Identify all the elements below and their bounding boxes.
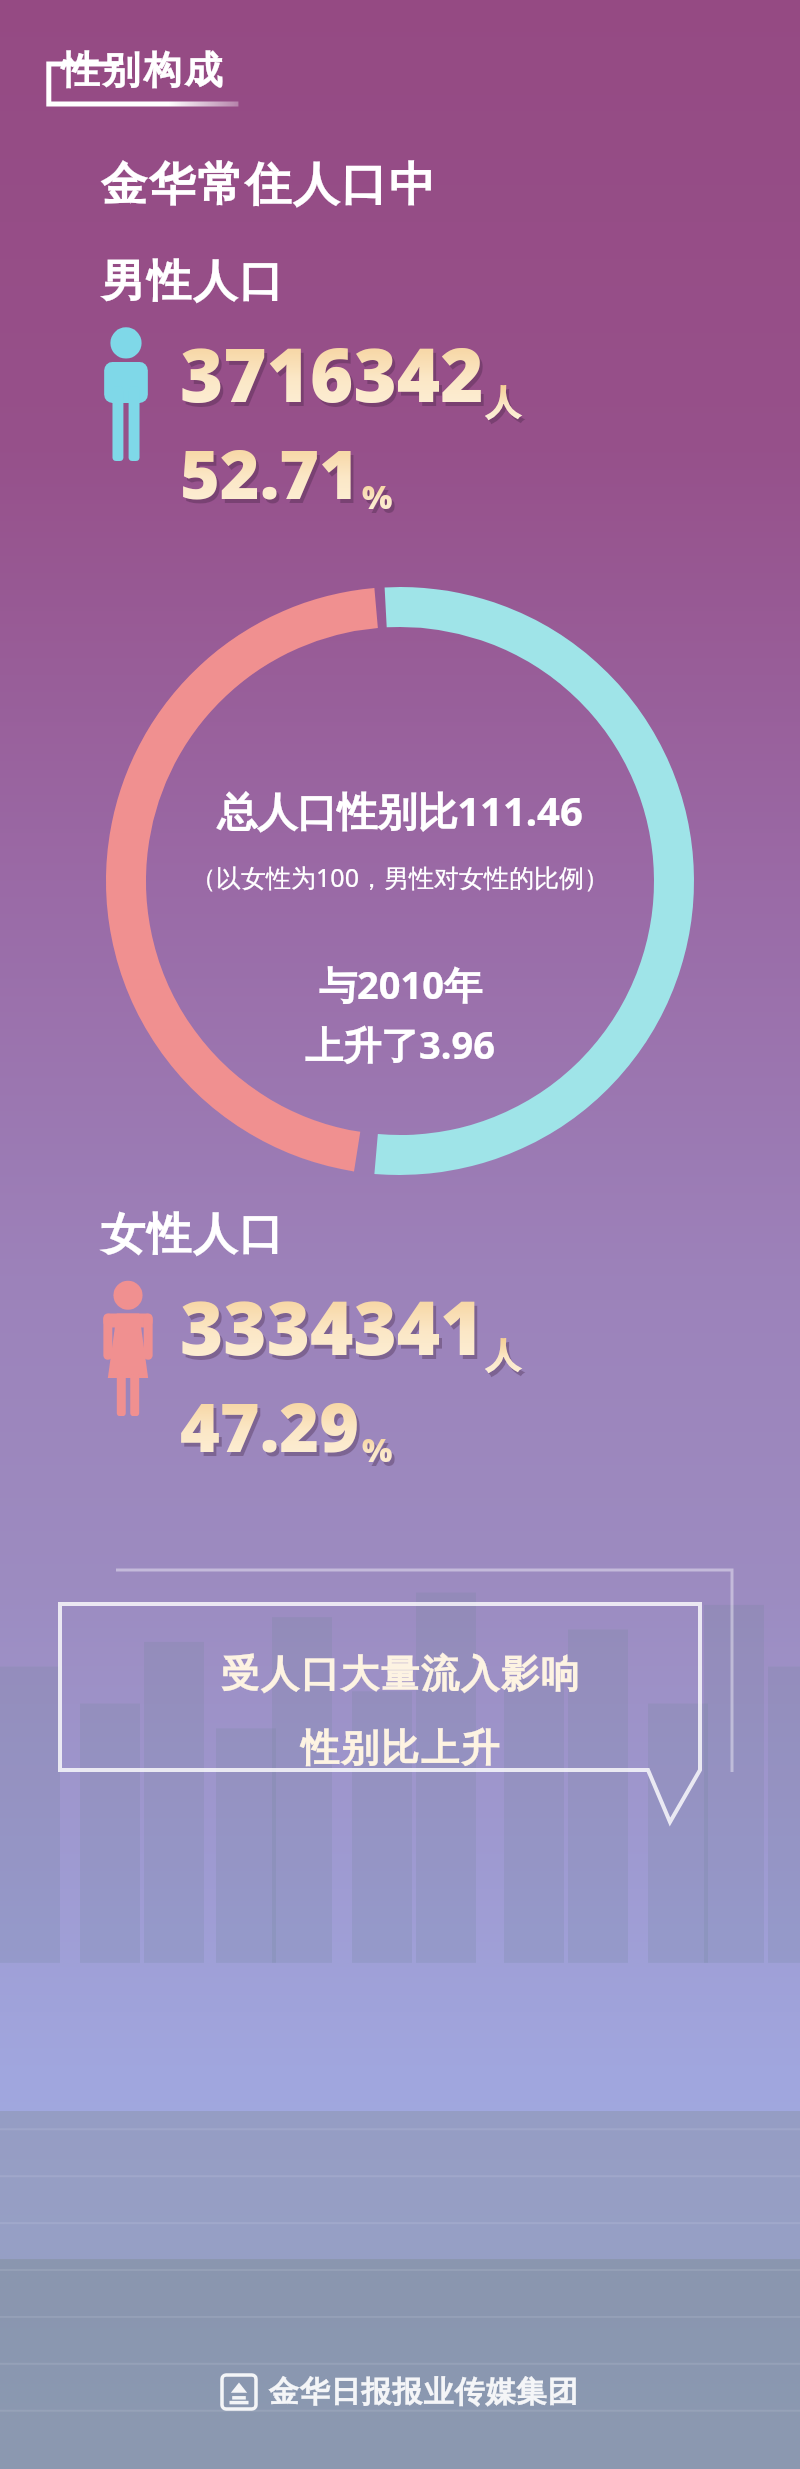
staticText: 3716342 [180, 323, 484, 424]
staticText: 总人口性别比111.46 [217, 783, 583, 838]
staticText: 人 [486, 381, 520, 424]
staticText: 52.71 [183, 430, 363, 523]
staticText: 47.29 [183, 1383, 363, 1476]
staticText: % [362, 475, 393, 519]
staticText: 与2010年 [319, 958, 482, 1010]
button[interactable]: 受人口大量流入影响 [0, 1542, 800, 1842]
other: Female figure [100, 1280, 156, 1420]
staticText: 金华常住人口中 [100, 156, 436, 214]
other: Jinhua Daily logo [222, 2375, 256, 2409]
staticText: （以女性为100，男性对女性的比例） [191, 860, 609, 894]
staticText: 性别构成 [60, 46, 224, 94]
staticText: 金华日报报业传媒集团 [268, 2373, 578, 2411]
staticText: 人 [489, 1338, 523, 1381]
staticText: % [365, 479, 396, 523]
staticText: 3334341 [183, 1280, 487, 1381]
staticText: 3716342 [183, 327, 487, 428]
staticText: % [365, 1432, 396, 1476]
button[interactable]: 性别构成 [0, 30, 800, 120]
staticText: 受人口大量流入影响 [220, 1650, 580, 1698]
other: Male figure [100, 327, 152, 463]
staticText: 性别比上升 [300, 1724, 500, 1772]
staticText: 男性人口 [100, 254, 284, 309]
staticText: 47.29 [180, 1379, 360, 1472]
button[interactable]: Jinhua Daily logo [0, 2373, 800, 2411]
staticText: 人 [489, 385, 523, 428]
staticText: 52.71 [180, 426, 360, 519]
staticText: % [362, 1428, 393, 1472]
staticText: 上升了3.96 [305, 1018, 495, 1070]
staticText: 3334341 [180, 1276, 484, 1377]
staticText: 人 [486, 1334, 520, 1377]
staticText: 女性人口 [100, 1207, 284, 1262]
